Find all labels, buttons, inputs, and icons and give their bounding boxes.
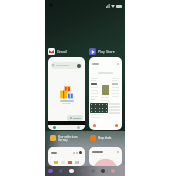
staticText: Your order is on the way [58,135,78,141]
button[interactable]: Gmail [48,48,85,55]
button[interactable]: App shortcut [111,169,115,173]
button[interactable] [48,147,85,166]
button[interactable]: App shortcut [69,169,74,173]
button[interactable]: Shop deals [90,135,121,141]
button[interactable]: Your order is on the way [50,135,86,141]
button[interactable]: Play Store [89,48,122,55]
staticText: Gmail [57,49,67,54]
button[interactable]: Compose [67,115,83,121]
staticText: Play Store [98,49,115,54]
button[interactable] [89,147,122,166]
button[interactable] [89,57,122,130]
button[interactable]: Search in mail [51,62,82,69]
button[interactable]: App shortcut [91,169,95,173]
button[interactable]: Search in mail [48,57,85,130]
staticText: Shop deals [98,136,112,140]
button[interactable]: App shortcut [101,169,105,173]
button[interactable]: App shortcut [48,169,53,173]
button[interactable]: App shortcut [59,169,63,173]
